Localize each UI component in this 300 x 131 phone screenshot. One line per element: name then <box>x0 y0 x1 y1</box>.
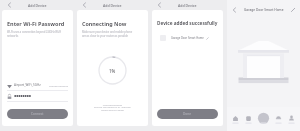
staticText: Airport_WiFi_5GHz <box>14 83 41 87</box>
staticText: Garage Door Smart Home <box>171 36 204 40</box>
button[interactable]: Back <box>80 1 88 9</box>
staticText: Garage Door Smart Home <box>244 8 284 12</box>
staticText: Add Device <box>103 3 122 8</box>
staticText: Troubleshooting Ensure the device is in … <box>94 103 131 112</box>
staticText: 1% <box>109 68 116 74</box>
button[interactable]: Back <box>230 6 238 14</box>
button[interactable]: Back <box>5 1 13 9</box>
button[interactable]: Add device <box>257 113 270 126</box>
button[interactable]: Devices <box>243 114 254 125</box>
button[interactable]: Back <box>155 1 163 9</box>
staticText: Wi-Fi uses a connection beyond 2.4GHz Wi… <box>7 30 68 37</box>
staticText: Add Device <box>28 3 47 8</box>
staticText: Done <box>183 112 192 116</box>
staticText: change network <box>49 84 68 87</box>
button[interactable]: Connect <box>7 109 68 119</box>
staticText: Make sure your device and mobile phone a… <box>82 30 133 37</box>
button[interactable]: Edit <box>289 6 297 14</box>
button[interactable]: Done <box>157 109 218 119</box>
button[interactable]: Home <box>230 114 241 125</box>
staticText: Connect <box>31 112 44 116</box>
button[interactable]: Profile <box>286 114 297 125</box>
staticText: Enter Wi-Fi Password <box>7 20 65 27</box>
staticText: Add Device <box>178 3 197 8</box>
staticText: Connecting Now <box>82 20 127 27</box>
button[interactable]: Scenes <box>273 114 284 125</box>
staticText: Device added successfully <box>157 20 218 26</box>
